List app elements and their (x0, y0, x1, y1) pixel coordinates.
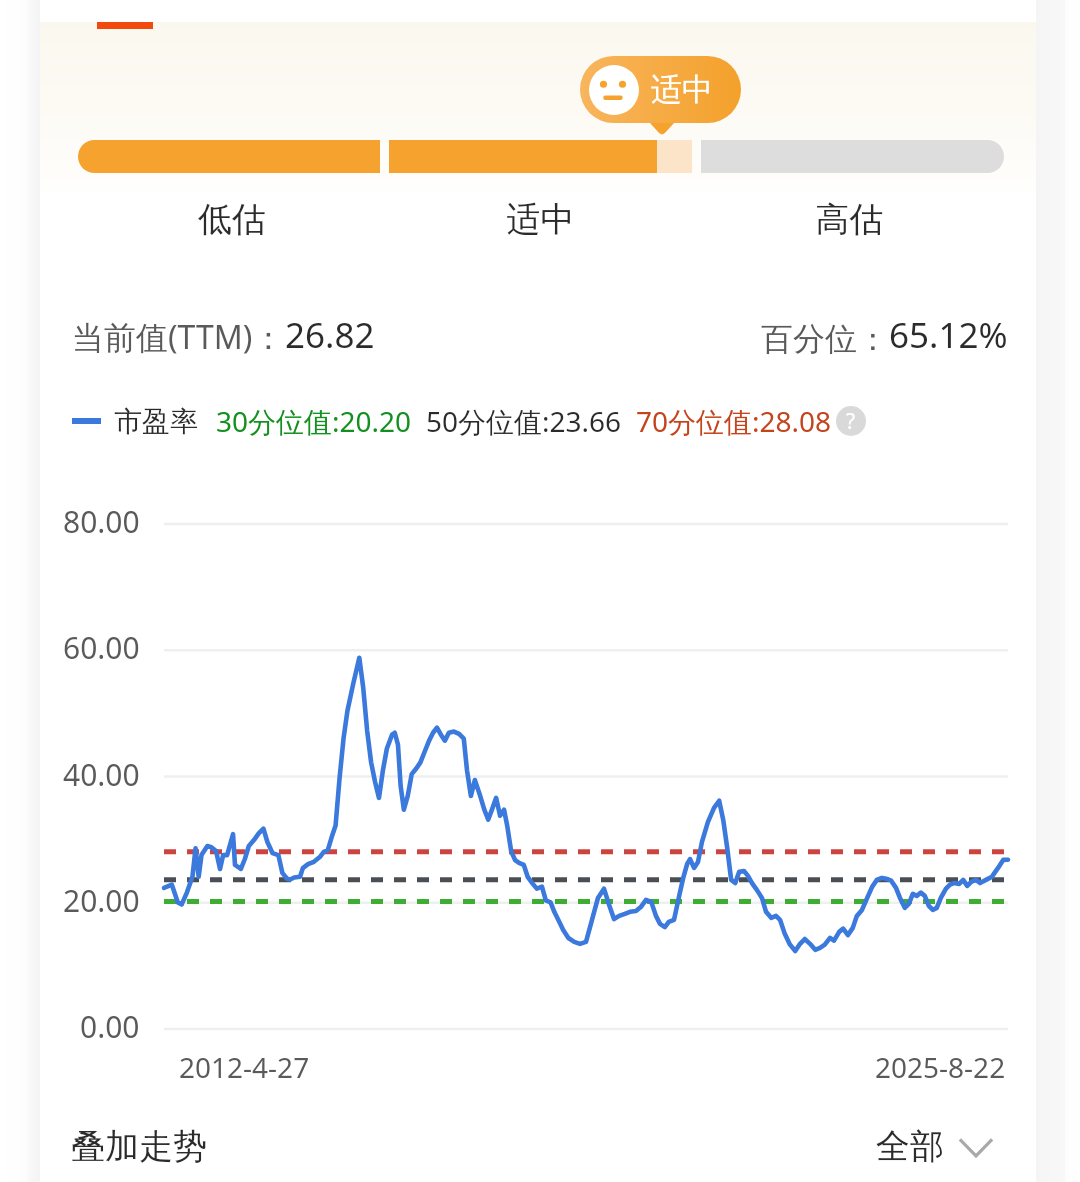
button[interactable]: 帮助 (836, 406, 866, 436)
staticText: 80.00 (63, 501, 140, 542)
staticText: 20.00 (63, 880, 140, 921)
staticText: 适中 (651, 70, 713, 109)
staticText: 市盈率 (114, 404, 198, 439)
button[interactable]: 适中 (580, 56, 741, 123)
staticText: 叠加走势 (71, 1125, 207, 1168)
staticText: 70分位值:28.08 (636, 402, 832, 440)
staticText: 2012-4-27 (179, 1048, 310, 1086)
staticText: 百分位： (761, 319, 889, 359)
staticText: 全部 (876, 1125, 944, 1168)
staticText: 40.00 (63, 754, 140, 795)
staticText: 30分位值:20.20 (216, 402, 412, 440)
staticText: 低估 (78, 198, 386, 241)
staticText: 65.12% (889, 311, 1008, 359)
staticText: 50分位值:23.66 (426, 402, 622, 440)
staticText: 适中 (386, 198, 695, 241)
button[interactable]: 全部 (876, 1125, 991, 1168)
staticText: 26.82 (285, 311, 375, 359)
staticText: 60.00 (63, 627, 140, 668)
staticText: 高估 (695, 198, 1004, 241)
staticText: 当前值(TTM)： (72, 315, 285, 359)
staticText: 2025-8-22 (875, 1048, 1006, 1086)
staticText: ? (846, 407, 856, 436)
staticText: 0.00 (80, 1006, 140, 1047)
